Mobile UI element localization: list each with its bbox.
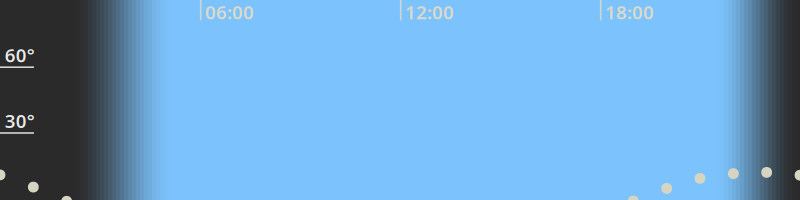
staticText: 60° — [5, 43, 35, 67]
staticText: 12:00 — [405, 0, 454, 24]
staticText: 06:00 — [205, 0, 254, 24]
staticText: 30° — [5, 108, 35, 133]
staticText: 18:00 — [605, 0, 654, 24]
